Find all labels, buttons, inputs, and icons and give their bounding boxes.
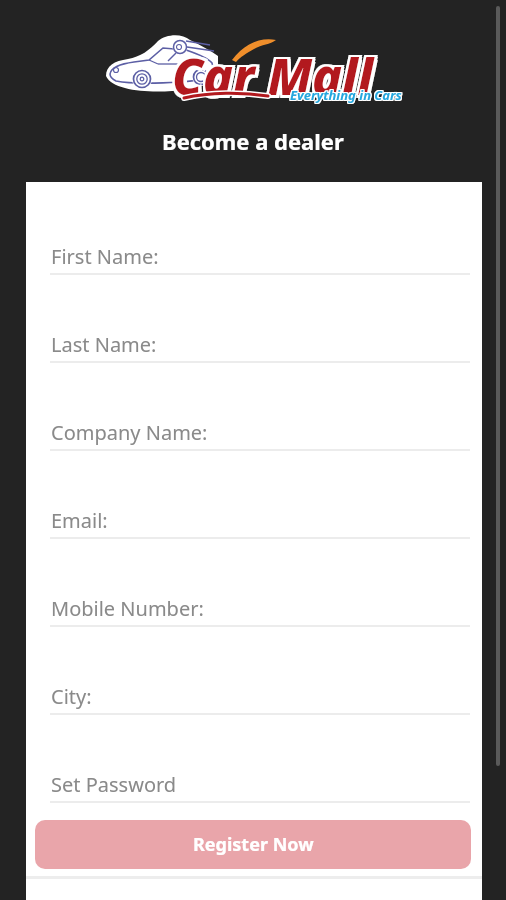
staticText: Register Now xyxy=(193,832,314,857)
staticText: Everything in Cars xyxy=(290,87,402,105)
button[interactable]: Set Password xyxy=(51,769,471,799)
staticText: Become a dealer xyxy=(162,126,344,156)
button[interactable]: Company Name: xyxy=(51,417,471,447)
staticText: First Name: xyxy=(51,243,159,270)
staticText: Set Password xyxy=(51,771,177,798)
staticText: Everything in Cars xyxy=(290,85,402,103)
staticText: Everything in Cars xyxy=(289,85,401,103)
staticText: Everything in Cars xyxy=(289,86,401,104)
button[interactable]: Email: xyxy=(51,505,471,535)
staticText: Everything in Cars xyxy=(290,86,402,104)
staticText: Car Mall xyxy=(175,42,377,110)
staticText: Email: xyxy=(51,507,108,534)
button[interactable]: Last Name: xyxy=(51,329,471,359)
staticText: Company Name: xyxy=(51,419,208,446)
staticText: Everything in Cars xyxy=(291,86,403,104)
staticText: Everything in Cars xyxy=(289,87,401,105)
staticText: Car Mall xyxy=(170,45,372,113)
button[interactable]: City: xyxy=(51,681,471,711)
staticText: Car Mall xyxy=(170,40,372,108)
button[interactable]: Mobile Number: xyxy=(51,593,471,623)
staticText: Car Mall xyxy=(172,45,374,113)
staticText: City: xyxy=(51,683,92,710)
staticText: Last Name: xyxy=(51,331,157,358)
staticText: Everything in Cars xyxy=(291,87,403,105)
staticText: Car Mall xyxy=(172,40,374,108)
button[interactable]: First Name: xyxy=(51,241,471,271)
staticText: Everything in Cars xyxy=(291,85,403,103)
button[interactable]: Register Now xyxy=(35,820,471,869)
staticText: Car Mall xyxy=(172,42,374,110)
staticText: Car Mall xyxy=(175,40,377,108)
staticText: Car Mall xyxy=(170,42,372,110)
staticText: Mobile Number: xyxy=(51,595,204,622)
staticText: Car Mall xyxy=(175,45,377,113)
